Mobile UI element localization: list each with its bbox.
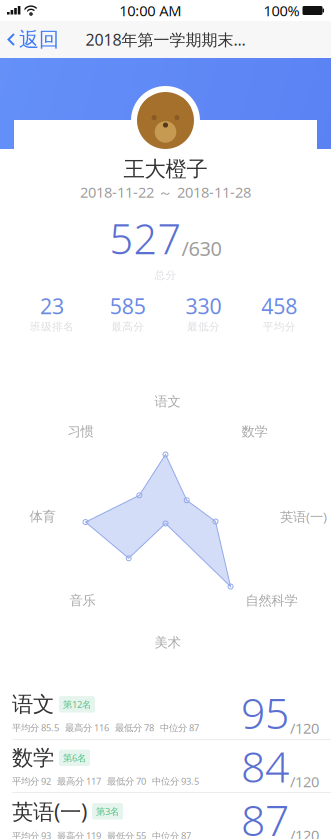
staticText: /120 [290, 772, 319, 791]
staticText: 英语(一) [280, 508, 327, 525]
staticText: 84 [241, 738, 289, 794]
staticText: 23 [40, 292, 64, 320]
staticText: /630 [181, 235, 221, 262]
staticText: 87 [241, 791, 289, 839]
staticText: 100% [263, 1, 299, 20]
staticText: 班级排名 [30, 320, 74, 333]
staticText: 2018-11-22 ～ 2018-11-28 [80, 182, 251, 202]
staticText: 第6名 [63, 752, 86, 764]
button[interactable]: 语文 [0, 686, 331, 739]
staticText: 2018年第一学期期末... [85, 29, 245, 50]
button[interactable]: 数学 [0, 739, 331, 792]
staticText: 返回 [19, 27, 59, 52]
staticText: 585 [110, 292, 146, 320]
staticText: 语文 [154, 393, 180, 410]
staticText: 数学 [241, 423, 267, 440]
staticText: 第3名 [96, 805, 119, 817]
staticText: 数学 [12, 745, 54, 771]
staticText: 总分 [154, 269, 176, 282]
staticText: 平均分 93 最高分 119 最低分 55 中位分 87 [12, 829, 191, 839]
staticText: 平均分 92 最高分 117 最低分 70 中位分 93.5 [12, 775, 199, 787]
staticText: 458 [261, 292, 297, 320]
staticText: 最高分 [111, 320, 144, 333]
staticText: 美术 [154, 634, 180, 651]
staticText: 10:00 AM [119, 1, 181, 20]
staticText: 第12名 [63, 698, 91, 710]
staticText: 平均分 [263, 320, 296, 333]
staticText: 习惯 [67, 423, 93, 440]
button[interactable]: 返回 [0, 19, 69, 60]
staticText: 527 [109, 211, 181, 266]
staticText: 英语(一) [12, 797, 87, 825]
staticText: 最低分 [187, 320, 220, 333]
staticText: /120 [290, 718, 319, 738]
staticText: 自然科学 [245, 592, 297, 609]
staticText: 语文 [12, 691, 54, 717]
staticText: 平均分 85.5 最高分 116 最低分 78 中位分 87 [12, 721, 199, 734]
staticText: 王大橙子 [123, 156, 207, 182]
staticText: 体育 [29, 508, 55, 525]
staticText: /120 [290, 825, 319, 839]
staticText: 330 [185, 292, 221, 320]
staticText: 音乐 [69, 592, 95, 609]
button[interactable]: 英语(一) [0, 793, 331, 839]
staticText: 95 [241, 684, 289, 741]
